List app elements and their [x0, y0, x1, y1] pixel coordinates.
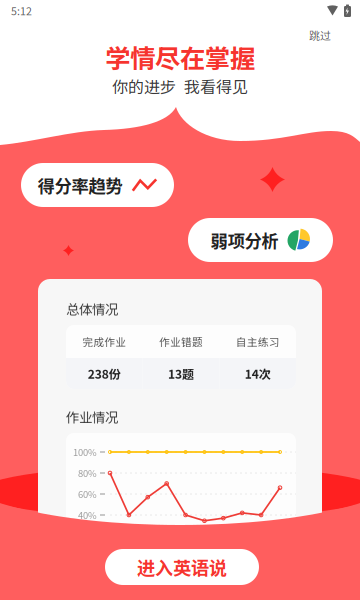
staticText: 60%	[78, 487, 97, 501]
staticText: 40%	[78, 508, 97, 522]
staticText: 自主练习	[236, 334, 280, 349]
staticText: 你的进步 我看得见	[112, 74, 248, 98]
button[interactable]: 进入英语说	[105, 549, 259, 585]
staticText: 总体情况	[66, 299, 118, 318]
staticText: 13题	[168, 365, 194, 382]
staticText: 作业错题	[159, 334, 203, 349]
staticText: 学情尽在掌握	[105, 39, 255, 75]
staticText: 得分率趋势	[37, 172, 122, 198]
staticText: 238份	[88, 365, 121, 382]
button[interactable]: 弱项分析	[188, 218, 333, 262]
button[interactable]: 跳过	[300, 23, 340, 47]
staticText: 100%	[73, 445, 97, 459]
staticText: 完成作业	[82, 334, 126, 349]
staticText: 80%	[78, 466, 97, 480]
staticText: 弱项分析	[210, 227, 278, 253]
staticText: 进入英语说	[137, 554, 227, 580]
button[interactable]: 得分率趋势	[21, 163, 174, 207]
staticText: 14次	[245, 365, 271, 382]
staticText: 跳过	[309, 27, 331, 43]
staticText: 作业情况	[66, 407, 118, 426]
staticText: 5:12	[11, 3, 32, 18]
